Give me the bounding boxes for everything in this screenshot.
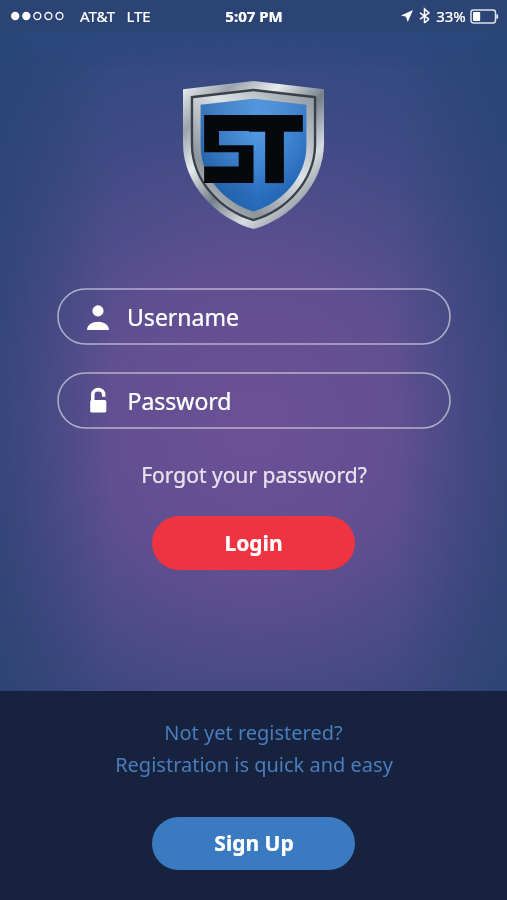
staticText: Username <box>127 301 239 332</box>
button[interactable]: Username <box>58 289 450 344</box>
staticText: 33% <box>436 6 466 26</box>
staticText: AT&T <box>80 6 115 26</box>
staticText: Login <box>224 529 283 558</box>
staticText: Registration is quick and easy <box>115 751 393 778</box>
staticText: Forgot your password? <box>141 461 367 490</box>
staticText: 5:07 PM <box>225 6 283 26</box>
staticText: Password <box>127 385 232 416</box>
staticText: Sign Up <box>214 829 294 858</box>
button[interactable]: Sign Up <box>152 817 355 870</box>
other: ST logo <box>183 81 324 229</box>
button[interactable]: Not yet registered? <box>0 719 507 778</box>
button[interactable]: Password <box>58 373 450 428</box>
staticText: Not yet registered? <box>164 719 343 746</box>
button[interactable]: Login <box>152 516 355 570</box>
staticText: LTE <box>126 6 151 26</box>
button[interactable]: Forgot your password? <box>0 457 507 494</box>
